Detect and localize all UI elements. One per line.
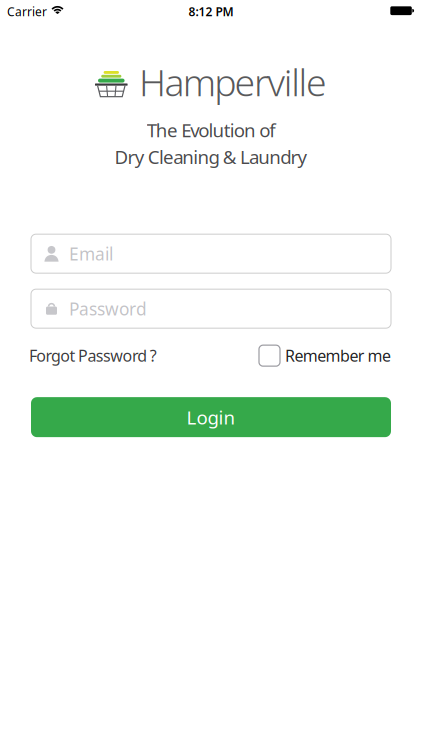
button[interactable]: Login [31, 397, 391, 437]
button[interactable]: Forgot Password ? [29, 345, 157, 366]
staticText: Password [69, 297, 147, 320]
staticText: 8:12 PM [188, 3, 233, 19]
staticText: Forgot Password ? [29, 345, 157, 366]
staticText: Hamperville [139, 57, 327, 107]
staticText: Dry Cleaning & Laundry [114, 144, 308, 169]
staticText: Login [186, 405, 235, 430]
button[interactable]: Password [31, 289, 391, 328]
staticText: Email [69, 242, 113, 265]
staticText: The Evolution of [147, 118, 275, 142]
button[interactable]: Remember me [259, 345, 391, 366]
staticText: Carrier [7, 3, 47, 19]
staticText: Remember me [285, 345, 391, 366]
button[interactable]: Email [31, 234, 391, 273]
